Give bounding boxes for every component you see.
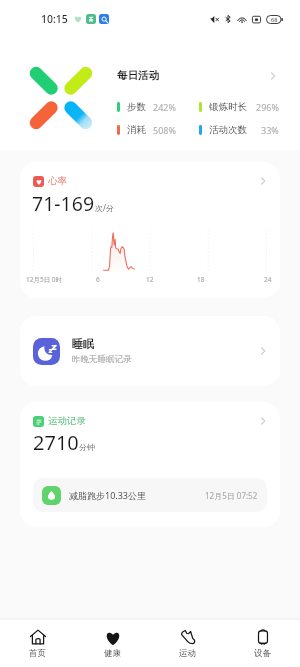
staticText: 33% <box>261 124 279 136</box>
staticText: 6 <box>96 275 100 284</box>
staticText: 消耗 <box>127 124 146 136</box>
staticText: 508% <box>153 124 176 136</box>
staticText: 活动次数 <box>209 124 247 136</box>
button[interactable]: Home <box>0 620 75 667</box>
staticText: 锻炼时长 <box>209 101 247 113</box>
staticText: 健康 <box>104 648 121 659</box>
staticText: 心率 <box>48 175 67 187</box>
staticText: 12月5日 07:52 <box>205 490 258 501</box>
staticText: 71-169 <box>32 190 95 217</box>
button[interactable]: 睡眠 <box>20 316 280 386</box>
button[interactable]: 运动记录 <box>20 402 280 527</box>
staticText: 步数 <box>127 101 146 113</box>
staticText: 分钟 <box>79 442 95 452</box>
button[interactable]: 减脂跑步10.33公里 <box>33 478 267 512</box>
staticText: 24 <box>264 275 272 284</box>
staticText: 18 <box>197 275 205 284</box>
staticText: 首页 <box>29 648 46 659</box>
staticText: 次/分 <box>95 202 114 213</box>
staticText: 设备 <box>254 648 271 659</box>
button[interactable]: Devices <box>225 620 300 667</box>
staticText: 运动记录 <box>48 415 86 427</box>
staticText: 242% <box>153 101 176 113</box>
staticText: 运动 <box>179 648 196 659</box>
staticText: 296% <box>256 101 279 113</box>
staticText: 睡眠 <box>72 337 94 351</box>
button[interactable]: 每日活动 <box>117 66 278 85</box>
button[interactable]: Workout <box>150 620 225 667</box>
button[interactable]: Health <box>75 620 150 667</box>
staticText: 每日活动 <box>117 69 159 82</box>
staticText: 68 <box>271 16 278 23</box>
staticText: 减脂跑步10.33公里 <box>69 489 147 501</box>
staticText: 10:15 <box>41 12 68 26</box>
button[interactable]: 心率 <box>20 162 280 298</box>
staticText: 2710 <box>33 429 79 456</box>
staticText: 12月5日 0时 <box>26 275 63 284</box>
staticText: 昨晚无睡眠记录 <box>72 354 132 365</box>
staticText: 12 <box>146 275 154 284</box>
